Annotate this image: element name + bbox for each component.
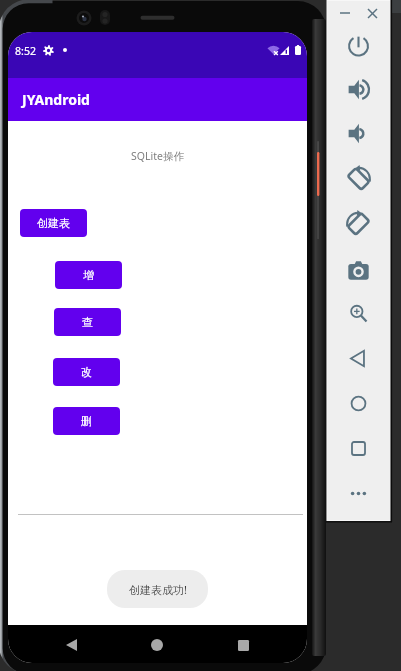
staticText: 改 <box>81 365 92 379</box>
staticText: 创建表成功! <box>129 582 187 597</box>
button[interactable]: Power <box>342 28 374 60</box>
button[interactable]: 改 <box>53 358 120 386</box>
button[interactable]: 查 <box>54 308 121 336</box>
button[interactable]: Home <box>342 387 374 419</box>
button[interactable]: Volume down <box>342 117 374 149</box>
staticText: SQLite操作 <box>131 149 184 163</box>
button[interactable]: Back <box>51 625 91 663</box>
staticText: 创建表 <box>37 216 70 230</box>
button[interactable]: Back <box>342 342 374 374</box>
button[interactable]: Minimize <box>336 4 354 22</box>
button[interactable]: Recent apps <box>223 625 263 663</box>
button[interactable]: Zoom <box>342 297 374 329</box>
button[interactable]: 创建表 <box>20 209 87 237</box>
button[interactable]: Take screenshot <box>342 252 374 284</box>
button[interactable]: Rotate left <box>342 162 374 194</box>
staticText: 增 <box>83 268 94 282</box>
button[interactable]: Close <box>363 4 381 22</box>
button[interactable]: 创建表成功! <box>107 570 208 608</box>
staticText: 删 <box>81 414 92 428</box>
button[interactable]: 增 <box>55 261 122 289</box>
button[interactable]: Overview <box>342 432 374 464</box>
staticText: JYAndroid <box>22 90 90 109</box>
button[interactable]: Home <box>137 625 177 663</box>
button[interactable]: 删 <box>53 407 120 435</box>
button[interactable]: More <box>342 477 374 509</box>
button[interactable]: Volume up <box>342 73 374 105</box>
button[interactable]: Rotate right <box>342 207 374 239</box>
staticText: 查 <box>82 315 93 329</box>
staticText: 8:52 <box>15 44 37 58</box>
